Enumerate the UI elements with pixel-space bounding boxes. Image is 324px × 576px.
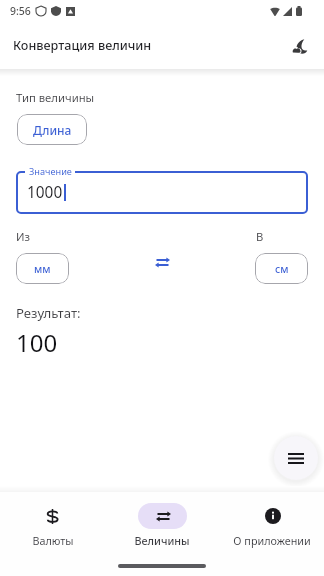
button[interactable]: мм (16, 253, 69, 284)
staticText: О приложении (233, 533, 311, 548)
staticText: Величины (134, 533, 190, 548)
staticText: Результат: (16, 304, 81, 322)
staticText: Конвертация величин (13, 37, 152, 54)
button[interactable] (16, 171, 308, 214)
staticText: мм (34, 262, 51, 276)
button[interactable]: Величины (104, 503, 220, 548)
staticText: см (275, 262, 289, 276)
button[interactable]: см (255, 253, 308, 284)
staticText: 100 (16, 326, 58, 359)
button[interactable]: Меню (274, 436, 318, 480)
button[interactable]: Валюты (1, 503, 104, 548)
staticText: 9:56 (10, 4, 31, 18)
staticText: Длина (33, 122, 72, 138)
staticText: 1000 (27, 182, 63, 203)
staticText: Значение (29, 165, 72, 178)
button[interactable]: Ночной режим (283, 30, 315, 62)
button[interactable]: О приложении (220, 503, 324, 548)
staticText: Из (16, 229, 31, 244)
staticText: Валюты (32, 533, 74, 548)
staticText: В (256, 229, 264, 244)
staticText: Тип величины (16, 90, 95, 105)
button[interactable]: Поменять местами (147, 247, 177, 277)
button[interactable]: Длина (17, 114, 87, 145)
